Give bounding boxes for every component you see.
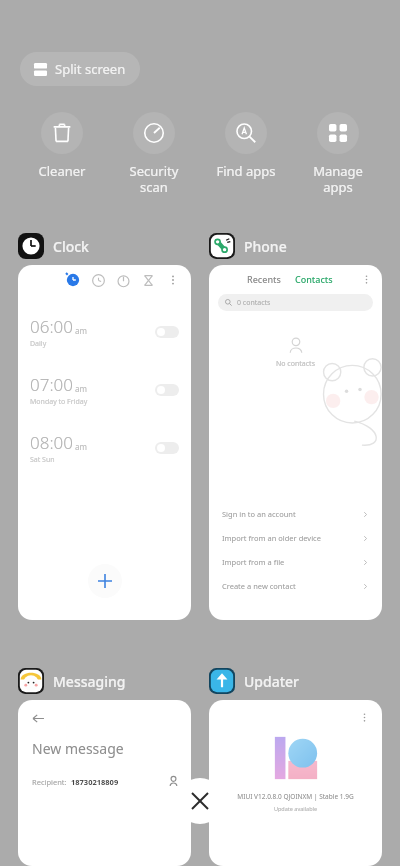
- button[interactable]: Find apps: [204, 108, 288, 184]
- button[interactable]: Back: [18, 700, 191, 866]
- staticText: Manage apps: [296, 162, 380, 195]
- button[interactable]: Toggle alarm 06:00: [155, 326, 179, 338]
- button[interactable]: Sign in to an account: [209, 502, 382, 526]
- staticText: Find apps: [204, 162, 288, 180]
- button[interactable]: Recents: [247, 273, 281, 285]
- staticText: Updater: [244, 672, 300, 691]
- button[interactable]: 08:00: [18, 431, 191, 465]
- button[interactable]: Phone: [209, 233, 287, 259]
- button[interactable]: Updater: [209, 668, 300, 694]
- button[interactable]: Cleaner: [20, 108, 104, 184]
- staticText: Split screen: [55, 60, 126, 78]
- staticText: 08:00: [30, 431, 73, 454]
- staticText: Create a new contact: [222, 581, 296, 591]
- button[interactable]: 07:00: [18, 373, 191, 407]
- button[interactable]: Clock: [18, 233, 89, 259]
- button[interactable]: 0 contacts: [218, 294, 373, 311]
- staticText: Clock: [53, 237, 89, 256]
- button[interactable]: 06:00: [18, 315, 191, 349]
- staticText: Sign in to an account: [222, 509, 296, 519]
- button[interactable]: More options: [209, 700, 382, 866]
- other: Pick contact: [168, 776, 179, 787]
- staticText: Monday to Friday: [30, 397, 88, 407]
- button[interactable]: Import from a file: [209, 550, 382, 574]
- button[interactable]: Security scan: [112, 108, 196, 199]
- button[interactable]: Messaging: [18, 668, 126, 694]
- staticText: Import from an older device: [222, 533, 321, 543]
- button[interactable]: Import from an older device: [209, 526, 382, 550]
- staticText: 07:00: [30, 373, 73, 396]
- staticText: 18730218809: [71, 777, 119, 787]
- staticText: Daily: [30, 339, 47, 349]
- staticText: New message: [32, 739, 124, 758]
- other: More options: [359, 712, 370, 723]
- button[interactable]: Add alarm: [88, 564, 122, 598]
- button[interactable]: Create a new contact: [209, 574, 382, 598]
- button[interactable]: Close all: [177, 778, 223, 824]
- other: Back: [32, 712, 45, 725]
- staticText: 06:00: [30, 315, 73, 338]
- button[interactable]: 06:00: [18, 265, 191, 620]
- staticText: Sat Sun: [30, 455, 55, 465]
- staticText: am: [75, 383, 87, 394]
- button[interactable]: Recents: [209, 265, 382, 620]
- button[interactable]: Toggle alarm 07:00: [155, 384, 179, 396]
- staticText: Phone: [244, 237, 287, 256]
- staticText: am: [75, 441, 87, 452]
- button[interactable]: Manage apps: [296, 108, 380, 199]
- staticText: 0 contacts: [237, 298, 271, 308]
- staticText: Messaging: [53, 672, 126, 691]
- staticText: Security scan: [112, 162, 196, 195]
- button[interactable]: Contacts: [295, 273, 333, 285]
- staticText: Recipient:: [32, 777, 67, 787]
- button[interactable]: Split screen: [20, 52, 140, 86]
- button[interactable]: Toggle alarm 08:00: [155, 442, 179, 454]
- staticText: No contacts: [276, 359, 315, 369]
- staticText: am: [75, 325, 87, 336]
- staticText: Cleaner: [20, 162, 104, 180]
- staticText: Update available: [209, 805, 382, 812]
- staticText: Import from a file: [222, 557, 285, 567]
- other: More options: [361, 274, 372, 285]
- staticText: MIUI V12.0.8.0 QJOINXM | Stable 1.9G: [209, 792, 382, 801]
